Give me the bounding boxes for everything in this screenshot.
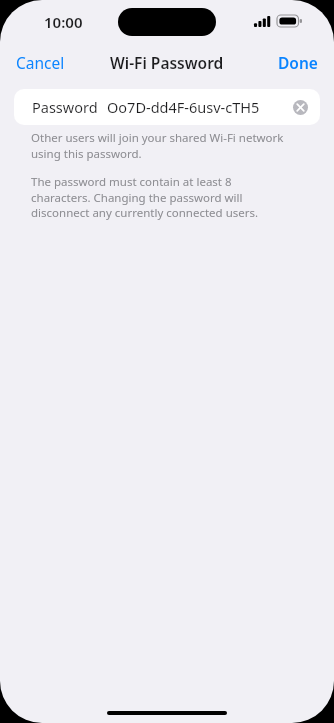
staticText: Other users will join your shared Wi-Fi … [31,130,289,161]
staticText: Password [32,97,98,117]
staticText: The password must contain at least 8 cha… [31,174,289,220]
staticText: Wi-Fi Password [110,52,224,73]
button[interactable]: Cancel [0,46,75,79]
staticText: 10:00 [44,12,83,32]
staticText: Cancel [16,52,65,73]
staticText: Done [278,52,318,73]
staticText: Oo7D-dd4F-6usv-cTH5 [107,97,260,117]
button[interactable]: Clear password [289,96,311,118]
button[interactable]: Password [14,89,320,125]
button[interactable]: Done [268,46,334,79]
